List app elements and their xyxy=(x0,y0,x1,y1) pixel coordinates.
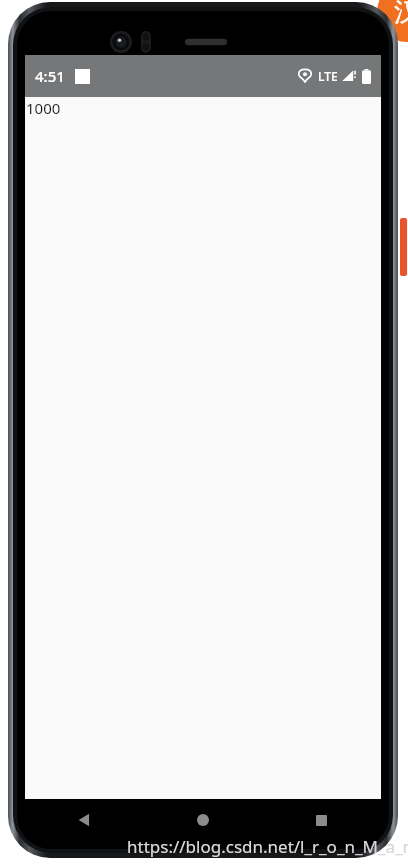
button[interactable]: Back xyxy=(25,799,143,841)
staticText: 4:51 xyxy=(35,66,65,86)
staticText: https://blog.csdn.net/l_r_o_n_M_a_n xyxy=(127,835,408,858)
button[interactable]: Recent apps xyxy=(262,799,381,841)
button[interactable]: Home xyxy=(143,799,262,841)
staticText: 汉 xyxy=(394,0,408,29)
staticText: LTE xyxy=(318,68,338,84)
other: Badge xyxy=(377,0,408,42)
staticText: 1000 xyxy=(26,98,61,118)
